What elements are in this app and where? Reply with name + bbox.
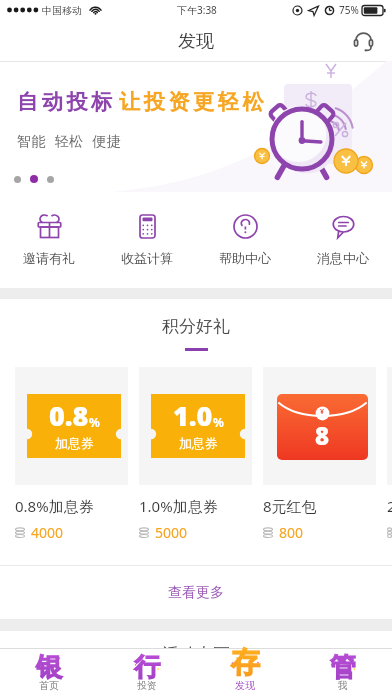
staticText: 发现 — [235, 679, 255, 692]
staticText: 首页 — [39, 679, 59, 692]
staticText: 智能 轻松 便捷 — [17, 131, 122, 150]
staticText: 投资 — [137, 679, 157, 692]
staticText: 4000 — [31, 523, 64, 542]
staticText: 0.8%加息券 — [15, 496, 94, 516]
staticText: 1.0%加息券 — [139, 496, 218, 516]
staticText: 8 — [315, 419, 330, 452]
button[interactable]: 消息中心 — [294, 192, 392, 288]
staticText: 帮助中心 — [219, 250, 271, 266]
staticText: 5000 — [155, 523, 188, 542]
button[interactable]: Customer service — [346, 24, 380, 58]
staticText: 8元红包 — [263, 496, 317, 516]
staticText: 800 — [279, 523, 304, 542]
staticText: 消息中心 — [317, 250, 369, 266]
staticText: 让投资更轻松 — [119, 89, 268, 115]
button[interactable]: 自动投标 — [0, 62, 392, 192]
button[interactable]: 查看更多 — [0, 566, 392, 619]
button[interactable]: 收益计算 — [98, 192, 196, 288]
staticText: 0.8 — [49, 397, 89, 434]
staticText: 管 — [330, 651, 356, 684]
staticText: 查看更多 — [168, 584, 224, 602]
staticText: 加息券 — [179, 435, 218, 451]
button[interactable]: 存 — [196, 648, 294, 696]
staticText: 2.0%加息券 — [387, 496, 392, 516]
staticText: 发现 — [178, 30, 214, 53]
staticText: 下午3:38 — [177, 3, 217, 17]
button[interactable]: 1.0 — [139, 367, 252, 542]
staticText: % — [213, 414, 224, 430]
staticText: 行 — [134, 651, 160, 684]
button[interactable]: ¥ — [263, 367, 376, 542]
button[interactable]: 0.8 — [15, 367, 128, 542]
staticText: % — [89, 414, 100, 430]
staticText: 收益计算 — [121, 250, 173, 266]
button[interactable]: 邀请有礼 — [0, 192, 98, 288]
staticText: 银 — [36, 651, 62, 684]
staticText: ¥ — [320, 407, 325, 417]
staticText: 加息券 — [55, 435, 94, 451]
staticText: 积分好礼 — [162, 316, 230, 337]
button[interactable]: 2.0 — [387, 367, 392, 542]
staticText: 存 — [231, 644, 260, 681]
staticText: 自动投标 — [17, 89, 116, 115]
staticText: 我 — [338, 679, 348, 692]
button[interactable]: 行 — [98, 648, 196, 696]
staticText: 中国移动 — [42, 4, 82, 17]
staticText: 活动专区 — [162, 644, 230, 665]
staticText: 邀请有礼 — [23, 250, 75, 266]
button[interactable]: 管 — [294, 648, 392, 696]
staticText: 75% — [339, 3, 359, 17]
button[interactable]: 帮助中心 — [196, 192, 294, 288]
staticText: 1.0 — [173, 397, 213, 434]
button[interactable]: 银 — [0, 648, 98, 696]
